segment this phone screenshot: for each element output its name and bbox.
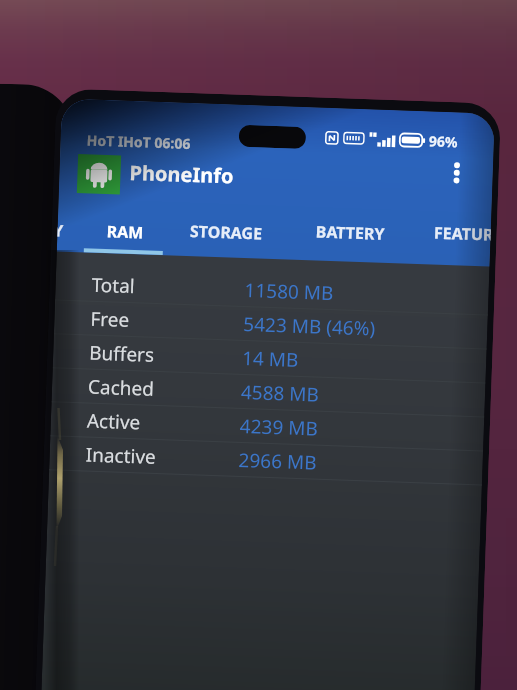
button[interactable]: STORAGE	[165, 210, 286, 254]
button[interactable]: BATTERY	[289, 210, 410, 255]
staticText: BATTERY	[315, 220, 385, 245]
staticText: Active	[86, 408, 240, 439]
staticText: HoT IHoT 06:06	[86, 130, 191, 153]
button[interactable]: Cached	[51, 368, 485, 417]
staticText: 4239 MB	[239, 413, 318, 442]
staticText: 11580 MB	[244, 277, 334, 306]
staticText: PhoneInfo	[129, 159, 234, 189]
staticText: Free	[90, 306, 244, 337]
button[interactable]: More options	[437, 152, 476, 193]
staticText: STORAGE	[189, 220, 263, 244]
staticText: 4588 MB	[240, 379, 319, 408]
staticText: Total	[91, 272, 245, 303]
staticText: 2966 MB	[238, 447, 317, 476]
staticText: FEATURES	[433, 222, 491, 246]
button[interactable]: Active	[50, 402, 484, 451]
staticText: Inactive	[85, 442, 239, 473]
staticText: RAM	[106, 220, 144, 243]
button[interactable]: Inactive	[49, 436, 483, 485]
button[interactable]: Buffers	[53, 334, 487, 383]
staticText: 5423 MB (46%)	[243, 311, 376, 342]
staticText: Cached	[88, 374, 241, 405]
button[interactable]: Total	[55, 266, 489, 315]
button[interactable]: RAM	[84, 210, 165, 253]
button[interactable]: FEATURES	[412, 212, 491, 254]
button[interactable]: Free	[54, 300, 488, 349]
staticText: 96%	[428, 131, 458, 151]
staticText: 14 MB	[242, 345, 300, 373]
button[interactable]: SUMMARY	[57, 210, 80, 251]
staticText: Buffers	[89, 340, 243, 371]
staticText: SUMMARY	[57, 219, 64, 242]
